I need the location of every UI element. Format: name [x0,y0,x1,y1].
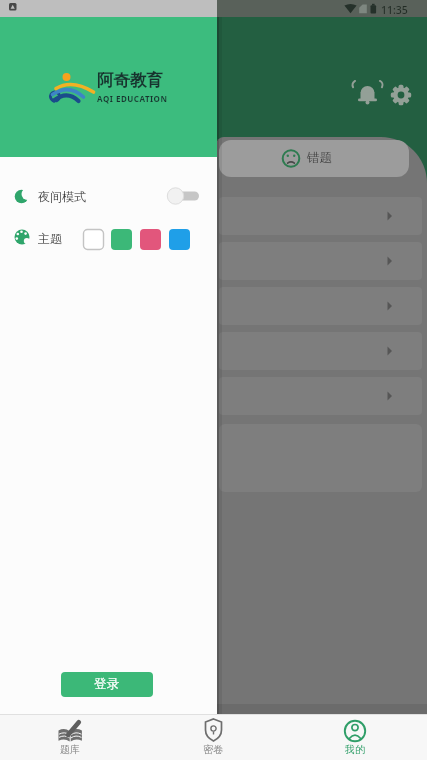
staticText: AQI EDUCATION [97,93,168,104]
button[interactable]: 登录 [61,672,153,697]
button[interactable] [169,229,190,250]
staticText: 11:35 [381,3,408,17]
staticText: 密卷 [203,743,223,756]
button[interactable] [111,229,132,250]
button[interactable] [142,714,284,760]
button[interactable] [219,140,409,177]
staticText: 夜间模式 [38,189,86,204]
button[interactable] [0,182,216,210]
staticText: 错题 [307,150,332,166]
button[interactable] [140,229,161,250]
staticText: 我的 [345,743,365,756]
staticText: 登录 [94,676,119,692]
button[interactable] [355,82,381,108]
button[interactable] [83,229,104,250]
staticText: 主题 [38,231,62,246]
staticText: 阿奇教育 [97,70,163,91]
button[interactable] [0,714,142,760]
button[interactable] [389,82,415,108]
button[interactable] [167,187,201,205]
button[interactable] [284,714,427,760]
staticText: 题库 [60,743,80,756]
